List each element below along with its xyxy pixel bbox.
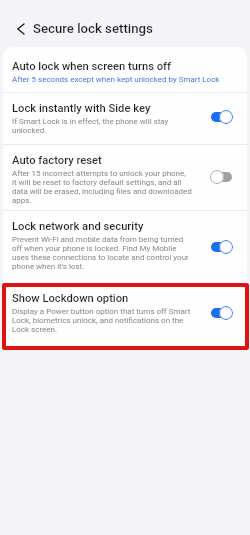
button[interactable]: Show Lockdown option [3, 282, 247, 349]
button[interactable]: Lock network and security [3, 211, 247, 282]
button[interactable] [8, 17, 32, 41]
staticText: Secure lock settings [33, 21, 153, 36]
button[interactable]: Auto factory reset [3, 145, 247, 210]
staticText: If Smart Lock is in effect, the phone wi… [12, 117, 169, 135]
staticText: Lock network and security [12, 220, 144, 233]
staticText: Auto lock when screen turns off [12, 60, 172, 73]
button[interactable]: Lock instantly with Side key [3, 93, 247, 144]
staticText: After 5 seconds except when kept unlocke… [12, 75, 220, 84]
staticText: Show Lockdown option [12, 292, 129, 305]
staticText: Lock instantly with Side key [12, 102, 151, 115]
staticText: Prevent Wi-Fi and mobile data from being… [12, 235, 189, 271]
staticText: Auto factory reset [12, 154, 102, 167]
staticText: After 15 incorrect attempts to unlock yo… [12, 169, 192, 205]
staticText: Display a Power button option that turns… [12, 307, 191, 334]
button[interactable]: Auto lock when screen turns off [3, 47, 247, 92]
